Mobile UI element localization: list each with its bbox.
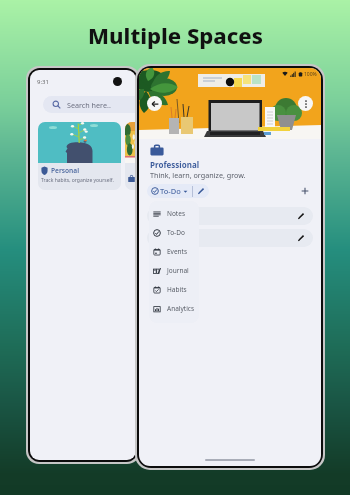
- staticText: Track habits, organize yourself.: [41, 177, 114, 184]
- button[interactable]: More options: [298, 96, 313, 111]
- staticText: Events: [167, 247, 188, 256]
- staticText: Habits: [167, 285, 187, 294]
- button[interactable]: Analytics: [149, 299, 199, 318]
- staticText: To-Do: [167, 228, 185, 237]
- staticText: Notes: [167, 209, 185, 218]
- staticText: Analytics: [167, 304, 195, 313]
- button[interactable]: To-Do: [147, 184, 209, 198]
- staticText: Personal: [51, 166, 80, 175]
- button[interactable]: Back: [147, 96, 162, 111]
- staticText: Multiple Spaces: [88, 20, 263, 50]
- button[interactable]: To-Do: [149, 223, 199, 242]
- button[interactable]: Professional: [125, 122, 136, 190]
- button[interactable]: [147, 229, 313, 247]
- staticText: Think, learn, organize, grow.: [150, 170, 246, 180]
- button[interactable]: Journal: [149, 261, 199, 280]
- staticText: Journal: [167, 266, 189, 275]
- staticText: To-Do: [160, 186, 181, 196]
- staticText: Search here..: [67, 100, 111, 110]
- staticText: 100%: [304, 71, 317, 78]
- button[interactable]: [147, 207, 313, 225]
- button[interactable]: Events: [149, 242, 199, 261]
- button[interactable]: Personal: [38, 122, 121, 190]
- button[interactable]: Habits: [149, 280, 199, 299]
- staticText: Professional: [150, 159, 200, 170]
- button[interactable]: Search here..: [43, 96, 136, 113]
- button[interactable]: Notes: [149, 204, 199, 223]
- staticText: 9:31: [37, 78, 49, 86]
- button[interactable]: Add: [298, 184, 312, 198]
